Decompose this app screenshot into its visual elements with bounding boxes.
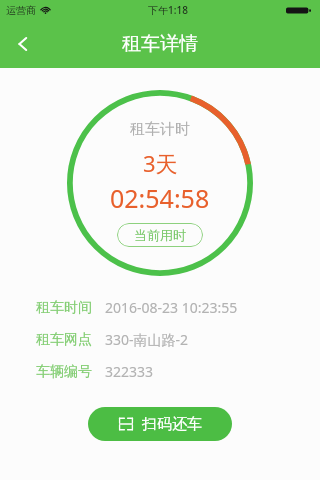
staticText: 租车时间 bbox=[36, 299, 92, 317]
staticText: 租车详情 bbox=[122, 32, 198, 56]
staticText: 运营商 bbox=[6, 4, 36, 17]
button[interactable]: 当前用时 bbox=[117, 223, 203, 247]
button[interactable]: 扫码还车 bbox=[88, 407, 232, 441]
staticText: 租车网点 bbox=[36, 331, 92, 349]
button[interactable]: 返回 bbox=[0, 20, 46, 68]
staticText: 02:54:58 bbox=[110, 181, 210, 215]
staticText: 322333 bbox=[105, 362, 154, 381]
staticText: 当前用时 bbox=[134, 227, 186, 243]
staticText: 下午1:18 bbox=[148, 3, 188, 17]
staticText: 330-南山路-2 bbox=[105, 330, 189, 349]
staticText: 3天 bbox=[143, 148, 178, 178]
staticText: 车辆编号 bbox=[36, 363, 92, 381]
staticText: 租车计时 bbox=[130, 120, 190, 139]
staticText: 扫码还车 bbox=[142, 415, 202, 434]
staticText: 2016-08-23 10:23:55 bbox=[105, 298, 238, 317]
